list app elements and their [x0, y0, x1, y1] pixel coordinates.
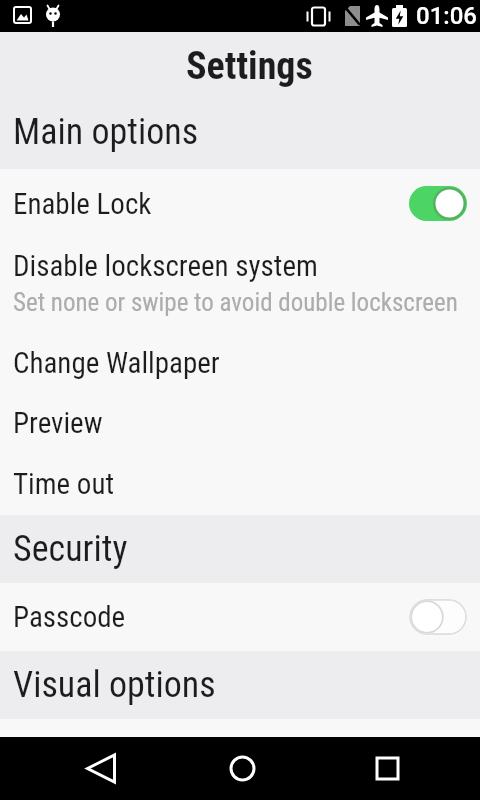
button[interactable] — [409, 186, 467, 221]
button[interactable]: Preview — [0, 393, 480, 453]
button[interactable]: Disable lockscreen system — [0, 238, 480, 333]
staticText: Settings — [186, 44, 313, 89]
button[interactable] — [356, 737, 419, 800]
staticText: 01:06 — [416, 2, 477, 30]
staticText: Security — [13, 528, 128, 570]
button[interactable]: Enable Lock — [0, 169, 480, 238]
button[interactable]: Passcode — [0, 583, 480, 651]
staticText: Change Wallpaper — [13, 346, 220, 380]
staticText: Set none or swipe to avoid double locksc… — [13, 288, 458, 317]
staticText: Main options — [13, 111, 199, 153]
button[interactable]: Time out — [0, 453, 480, 515]
staticText: Enable Lock — [13, 187, 152, 221]
staticText: Passcode — [13, 600, 126, 634]
staticText: Visual options — [13, 664, 216, 706]
staticText: Preview — [13, 406, 103, 440]
button[interactable] — [70, 737, 133, 800]
button[interactable] — [409, 599, 467, 635]
staticText: Disable lockscreen system — [13, 249, 318, 283]
staticText: Time out — [13, 467, 114, 501]
button[interactable] — [211, 737, 274, 800]
button[interactable]: Change Wallpaper — [0, 333, 480, 393]
